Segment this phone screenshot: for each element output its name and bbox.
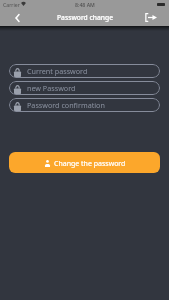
- button[interactable]: Log out: [141, 10, 159, 25]
- staticText: Password change: [57, 13, 113, 22]
- staticText: Carrier: [3, 1, 20, 8]
- button[interactable]: Change the password: [9, 152, 160, 173]
- staticText: 8:48 AM: [75, 1, 95, 8]
- staticText: Current password: [27, 66, 88, 76]
- staticText: Password confirmation: [27, 100, 105, 110]
- staticText: new Password: [27, 83, 76, 93]
- button[interactable]: Password confirmation: [9, 98, 160, 112]
- button[interactable]: new Password: [9, 81, 160, 95]
- staticText: Change the password: [54, 159, 126, 169]
- button[interactable]: Back: [15, 14, 29, 26]
- button[interactable]: Current password: [9, 64, 160, 78]
